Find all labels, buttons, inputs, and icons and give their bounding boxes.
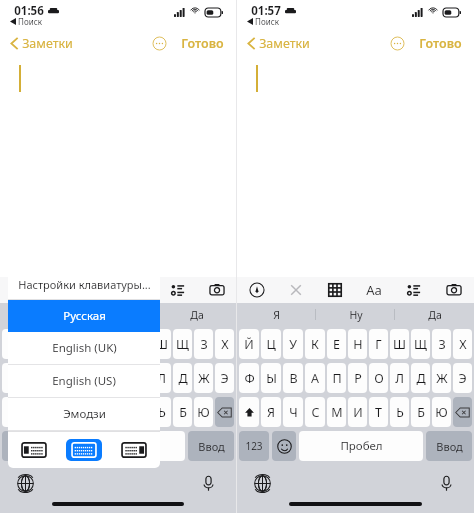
button[interactable]: Checklist: [394, 277, 434, 303]
button[interactable]: Ввод: [426, 431, 472, 461]
button[interactable]: К: [305, 329, 325, 359]
button[interactable]: П: [327, 363, 346, 393]
button[interactable]: О: [369, 363, 388, 393]
button[interactable]: Ы: [261, 363, 281, 393]
button[interactable]: У: [283, 329, 303, 359]
button[interactable]: More options: [387, 33, 408, 54]
button[interactable]: Change keyboard language: [251, 472, 274, 495]
button[interactable]: Checklist: [158, 277, 197, 303]
button[interactable]: English (US): [8, 365, 160, 397]
button[interactable]: Full keyboard: [66, 439, 102, 461]
button[interactable]: М: [89, 397, 108, 427]
button[interactable]: Р: [348, 363, 367, 393]
button[interactable]: English (UK): [8, 332, 160, 364]
button[interactable]: Ну: [316, 303, 395, 326]
button[interactable]: [2, 397, 22, 427]
button[interactable]: Да: [395, 303, 474, 326]
button[interactable]: Backspace: [215, 397, 234, 427]
button[interactable]: Ц: [24, 329, 44, 359]
button[interactable]: Я: [261, 397, 281, 427]
button[interactable]: 123: [2, 431, 32, 461]
button[interactable]: Да: [157, 303, 236, 326]
button[interactable]: Ну: [78, 303, 157, 326]
button[interactable]: А: [305, 363, 325, 393]
button[interactable]: Х: [453, 329, 472, 359]
button[interactable]: Пробел: [299, 431, 423, 461]
button[interactable]: Д: [411, 363, 430, 393]
button[interactable]: Заметки: [7, 32, 76, 55]
button[interactable]: Markup: [237, 277, 276, 303]
button[interactable]: С: [68, 397, 87, 427]
button[interactable]: Ж: [432, 363, 451, 393]
button[interactable]: Заметки: [244, 32, 313, 55]
button[interactable]: З: [194, 329, 213, 359]
button[interactable]: Close: [40, 277, 80, 303]
button[interactable]: Close: [276, 277, 315, 303]
button[interactable]: В: [46, 363, 66, 393]
button[interactable]: К: [68, 329, 87, 359]
button[interactable]: Format: [119, 277, 158, 303]
button[interactable]: И: [348, 397, 367, 427]
button[interactable]: Настройки клавиатуры...: [8, 269, 160, 299]
button[interactable]: Т: [369, 397, 388, 427]
button[interactable]: Format: [354, 277, 394, 303]
button[interactable]: Camera: [197, 277, 236, 303]
button[interactable]: Table: [80, 277, 119, 303]
button[interactable]: В: [283, 363, 303, 393]
button[interactable]: Эмодзи: [8, 398, 160, 430]
button[interactable]: [239, 397, 259, 427]
button[interactable]: Й: [2, 329, 22, 359]
button[interactable]: Н: [110, 329, 129, 359]
button[interactable]: Б: [411, 397, 430, 427]
button[interactable]: О: [131, 363, 150, 393]
button[interactable]: Е: [89, 329, 108, 359]
button[interactable]: Х: [215, 329, 234, 359]
button[interactable]: Готово: [417, 32, 464, 55]
button[interactable]: Э: [215, 363, 234, 393]
button[interactable]: Ч: [283, 397, 303, 427]
button[interactable]: Ч: [46, 397, 66, 427]
button[interactable]: Emoji: [35, 431, 59, 461]
button[interactable]: Пробел: [62, 431, 185, 461]
button[interactable]: Щ: [411, 329, 430, 359]
button[interactable]: Т: [131, 397, 150, 427]
button[interactable]: Г: [131, 329, 150, 359]
button[interactable]: Г: [369, 329, 388, 359]
button[interactable]: И: [110, 397, 129, 427]
button[interactable]: Table: [315, 277, 354, 303]
button[interactable]: Я: [0, 303, 78, 326]
button[interactable]: Ф: [2, 363, 22, 393]
button[interactable]: Ы: [24, 363, 44, 393]
button[interactable]: Я: [24, 397, 44, 427]
button[interactable]: Dictation: [197, 472, 220, 495]
button[interactable]: П: [89, 363, 108, 393]
button[interactable]: 123: [239, 431, 269, 461]
button[interactable]: Р: [110, 363, 129, 393]
button[interactable]: А: [68, 363, 87, 393]
button[interactable]: М: [327, 397, 346, 427]
button[interactable]: Backspace: [453, 397, 472, 427]
button[interactable]: Русская: [8, 300, 160, 332]
button[interactable]: Camera: [434, 277, 474, 303]
button[interactable]: Ш: [390, 329, 409, 359]
button[interactable]: Ю: [432, 397, 451, 427]
button[interactable]: Я: [237, 303, 316, 326]
button[interactable]: Ж: [194, 363, 213, 393]
button[interactable]: Готово: [179, 32, 226, 55]
button[interactable]: Щ: [173, 329, 192, 359]
button[interactable]: Н: [348, 329, 367, 359]
button[interactable]: Dock left keyboard: [16, 439, 52, 461]
button[interactable]: Dock right keyboard: [116, 439, 152, 461]
button[interactable]: Ц: [261, 329, 281, 359]
button[interactable]: Ввод: [188, 431, 234, 461]
button[interactable]: Markup: [0, 277, 40, 303]
button[interactable]: Dictation: [435, 472, 458, 495]
button[interactable]: Л: [390, 363, 409, 393]
button[interactable]: Л: [152, 363, 171, 393]
button[interactable]: Ш: [152, 329, 171, 359]
button[interactable]: Emoji: [272, 431, 296, 461]
button[interactable]: С: [305, 397, 325, 427]
button[interactable]: Й: [239, 329, 259, 359]
button[interactable]: Ь: [152, 397, 171, 427]
button[interactable]: More options: [149, 33, 170, 54]
